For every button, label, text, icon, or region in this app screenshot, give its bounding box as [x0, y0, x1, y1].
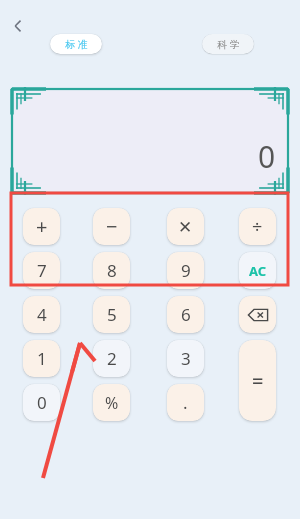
button[interactable]: 8 — [93, 252, 130, 289]
staticText: 9 — [181, 259, 191, 282]
staticText: 1 — [37, 347, 47, 370]
button[interactable]: ÷ — [239, 208, 276, 245]
staticText: 7 — [37, 259, 47, 282]
button[interactable]: + — [23, 208, 60, 245]
button[interactable]: 4 — [23, 296, 60, 333]
button[interactable]: . — [167, 384, 204, 421]
button[interactable]: 1 — [23, 340, 60, 377]
button[interactable]: = — [239, 340, 276, 421]
staticText: . — [183, 391, 188, 414]
staticText: 6 — [181, 303, 191, 326]
staticText: 科 学 — [217, 37, 240, 51]
button[interactable]: 5 — [93, 296, 130, 333]
staticText: 5 — [107, 303, 117, 326]
button[interactable]: 2 — [93, 340, 130, 377]
staticText: 0 — [258, 136, 276, 177]
staticText: 8 — [107, 259, 117, 282]
staticText: 2 — [107, 347, 117, 370]
staticText: − — [106, 213, 118, 240]
staticText: ÷ — [252, 214, 263, 239]
button[interactable]: − — [93, 208, 130, 245]
staticText: = — [252, 367, 264, 394]
button[interactable]: 7 — [23, 252, 60, 289]
staticText: + — [36, 213, 48, 240]
staticText: % — [105, 392, 119, 414]
button[interactable]: 科 学 — [202, 34, 254, 54]
button[interactable]: ✕ — [167, 208, 204, 245]
button[interactable]: % — [93, 384, 130, 421]
button[interactable]: 3 — [167, 340, 204, 377]
button[interactable]: 6 — [167, 296, 204, 333]
button[interactable]: AC — [239, 252, 276, 289]
button[interactable]: 标 准 — [50, 34, 102, 54]
button[interactable]: 9 — [167, 252, 204, 289]
button[interactable]: Backspace — [239, 296, 276, 333]
button[interactable]: Back — [4, 12, 32, 40]
staticText: ✕ — [178, 217, 193, 237]
staticText: 标 准 — [65, 37, 88, 51]
staticText: AC — [249, 262, 267, 280]
button[interactable]: 0 — [23, 384, 60, 421]
staticText: 0 — [37, 391, 47, 414]
staticText: 3 — [181, 347, 191, 370]
staticText: 4 — [37, 303, 47, 326]
